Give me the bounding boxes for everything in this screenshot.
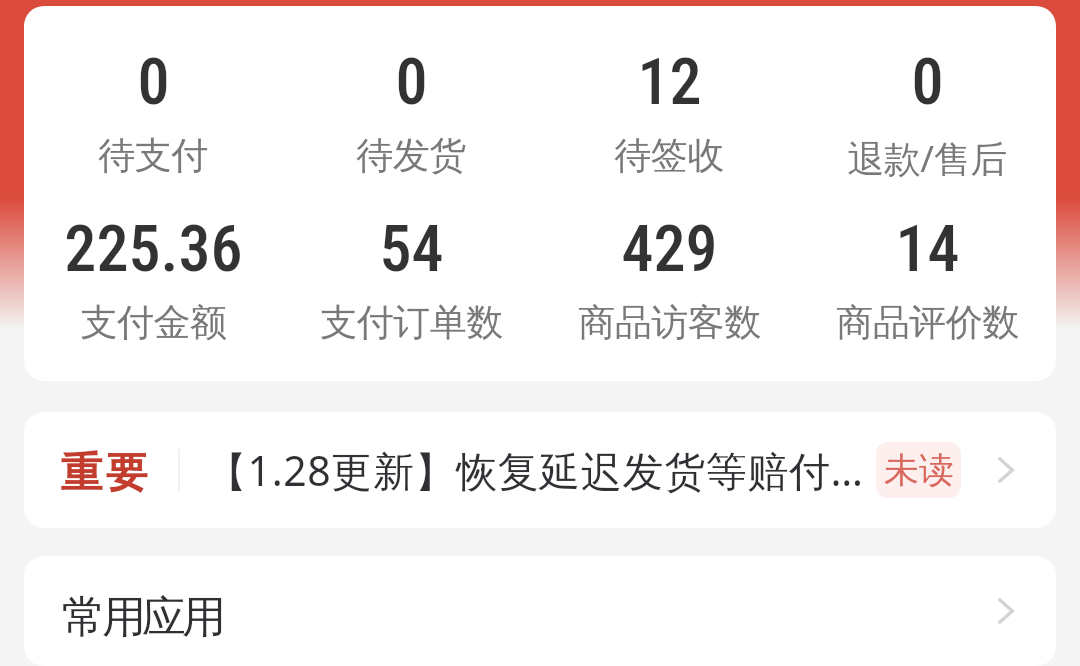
button[interactable]: 429 [540,212,798,346]
other: More [991,591,1021,631]
staticText: 0 [911,45,944,120]
staticText: 225.36 [64,212,243,287]
staticText: 商品评价数 [836,299,1019,346]
button[interactable]: 14 [798,212,1056,346]
staticText: 14 [895,212,960,287]
button[interactable]: 0 [24,45,282,179]
other: More [991,450,1021,490]
button[interactable]: 0 [282,45,540,179]
staticText: 54 [379,212,444,287]
button[interactable]: 0 [798,45,1056,183]
staticText: 429 [621,212,718,287]
button[interactable]: 225.36 [24,212,282,346]
staticText: 重要 [59,447,149,500]
staticText: 支付金额 [80,299,227,346]
staticText: 支付订单数 [320,299,503,346]
staticText: 0 [395,45,428,120]
staticText: 12 [637,45,702,120]
button[interactable]: 重要 [24,412,1056,528]
staticText: 待签收 [614,132,724,179]
staticText: 退款/售后 [847,132,1007,183]
button[interactable]: 54 [282,212,540,346]
staticText: 商品访客数 [578,299,761,346]
staticText: 未读 [884,448,954,492]
staticText: 常用应用 [64,590,224,645]
button[interactable]: 常用应用 [24,556,1056,666]
staticText: 待发货 [356,132,466,179]
staticText: 0 [137,45,170,120]
staticText: 待支付 [98,132,208,179]
button[interactable]: 12 [540,45,798,179]
staticText: 【1.28更新】恢复延迟发货等赔付… [206,442,862,498]
